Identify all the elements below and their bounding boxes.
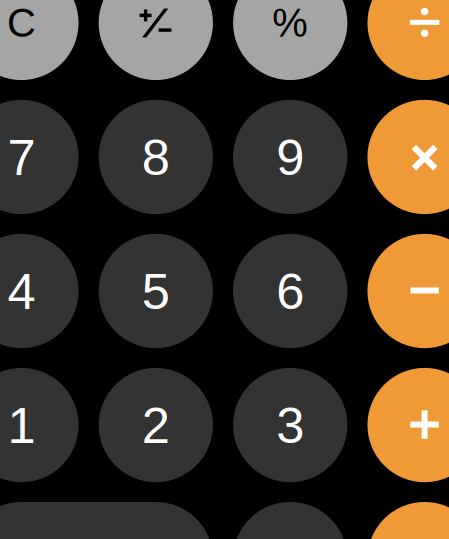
button[interactable]: Multiply: [367, 100, 449, 214]
button[interactable]: =: [367, 502, 449, 539]
staticText: 5: [142, 263, 170, 320]
button[interactable]: 1: [0, 368, 78, 482]
button[interactable]: 8: [99, 100, 213, 214]
button[interactable]: 6: [233, 234, 347, 348]
staticText: 4: [7, 263, 35, 320]
staticText: 9: [276, 129, 304, 186]
button[interactable]: .: [233, 502, 347, 539]
button[interactable]: Divide: [367, 0, 449, 80]
staticText: %: [272, 1, 308, 45]
button[interactable]: Plus Minus: [99, 0, 213, 80]
staticText: 7: [7, 129, 35, 186]
button[interactable]: 7: [0, 100, 78, 214]
button[interactable]: 9: [233, 100, 347, 214]
button[interactable]: 0: [0, 502, 213, 539]
staticText: 1: [7, 397, 35, 454]
button[interactable]: Subtract: [367, 234, 449, 348]
staticText: 2: [142, 397, 170, 454]
button[interactable]: 3: [233, 368, 347, 482]
button[interactable]: 2: [99, 368, 213, 482]
button[interactable]: 5: [99, 234, 213, 348]
button[interactable]: C: [0, 0, 78, 80]
staticText: C: [7, 1, 36, 45]
button[interactable]: %: [233, 0, 347, 80]
button[interactable]: Add: [367, 368, 449, 482]
staticText: 6: [276, 263, 304, 320]
button[interactable]: 4: [0, 234, 78, 348]
staticText: 3: [276, 397, 304, 454]
staticText: 8: [142, 129, 170, 186]
